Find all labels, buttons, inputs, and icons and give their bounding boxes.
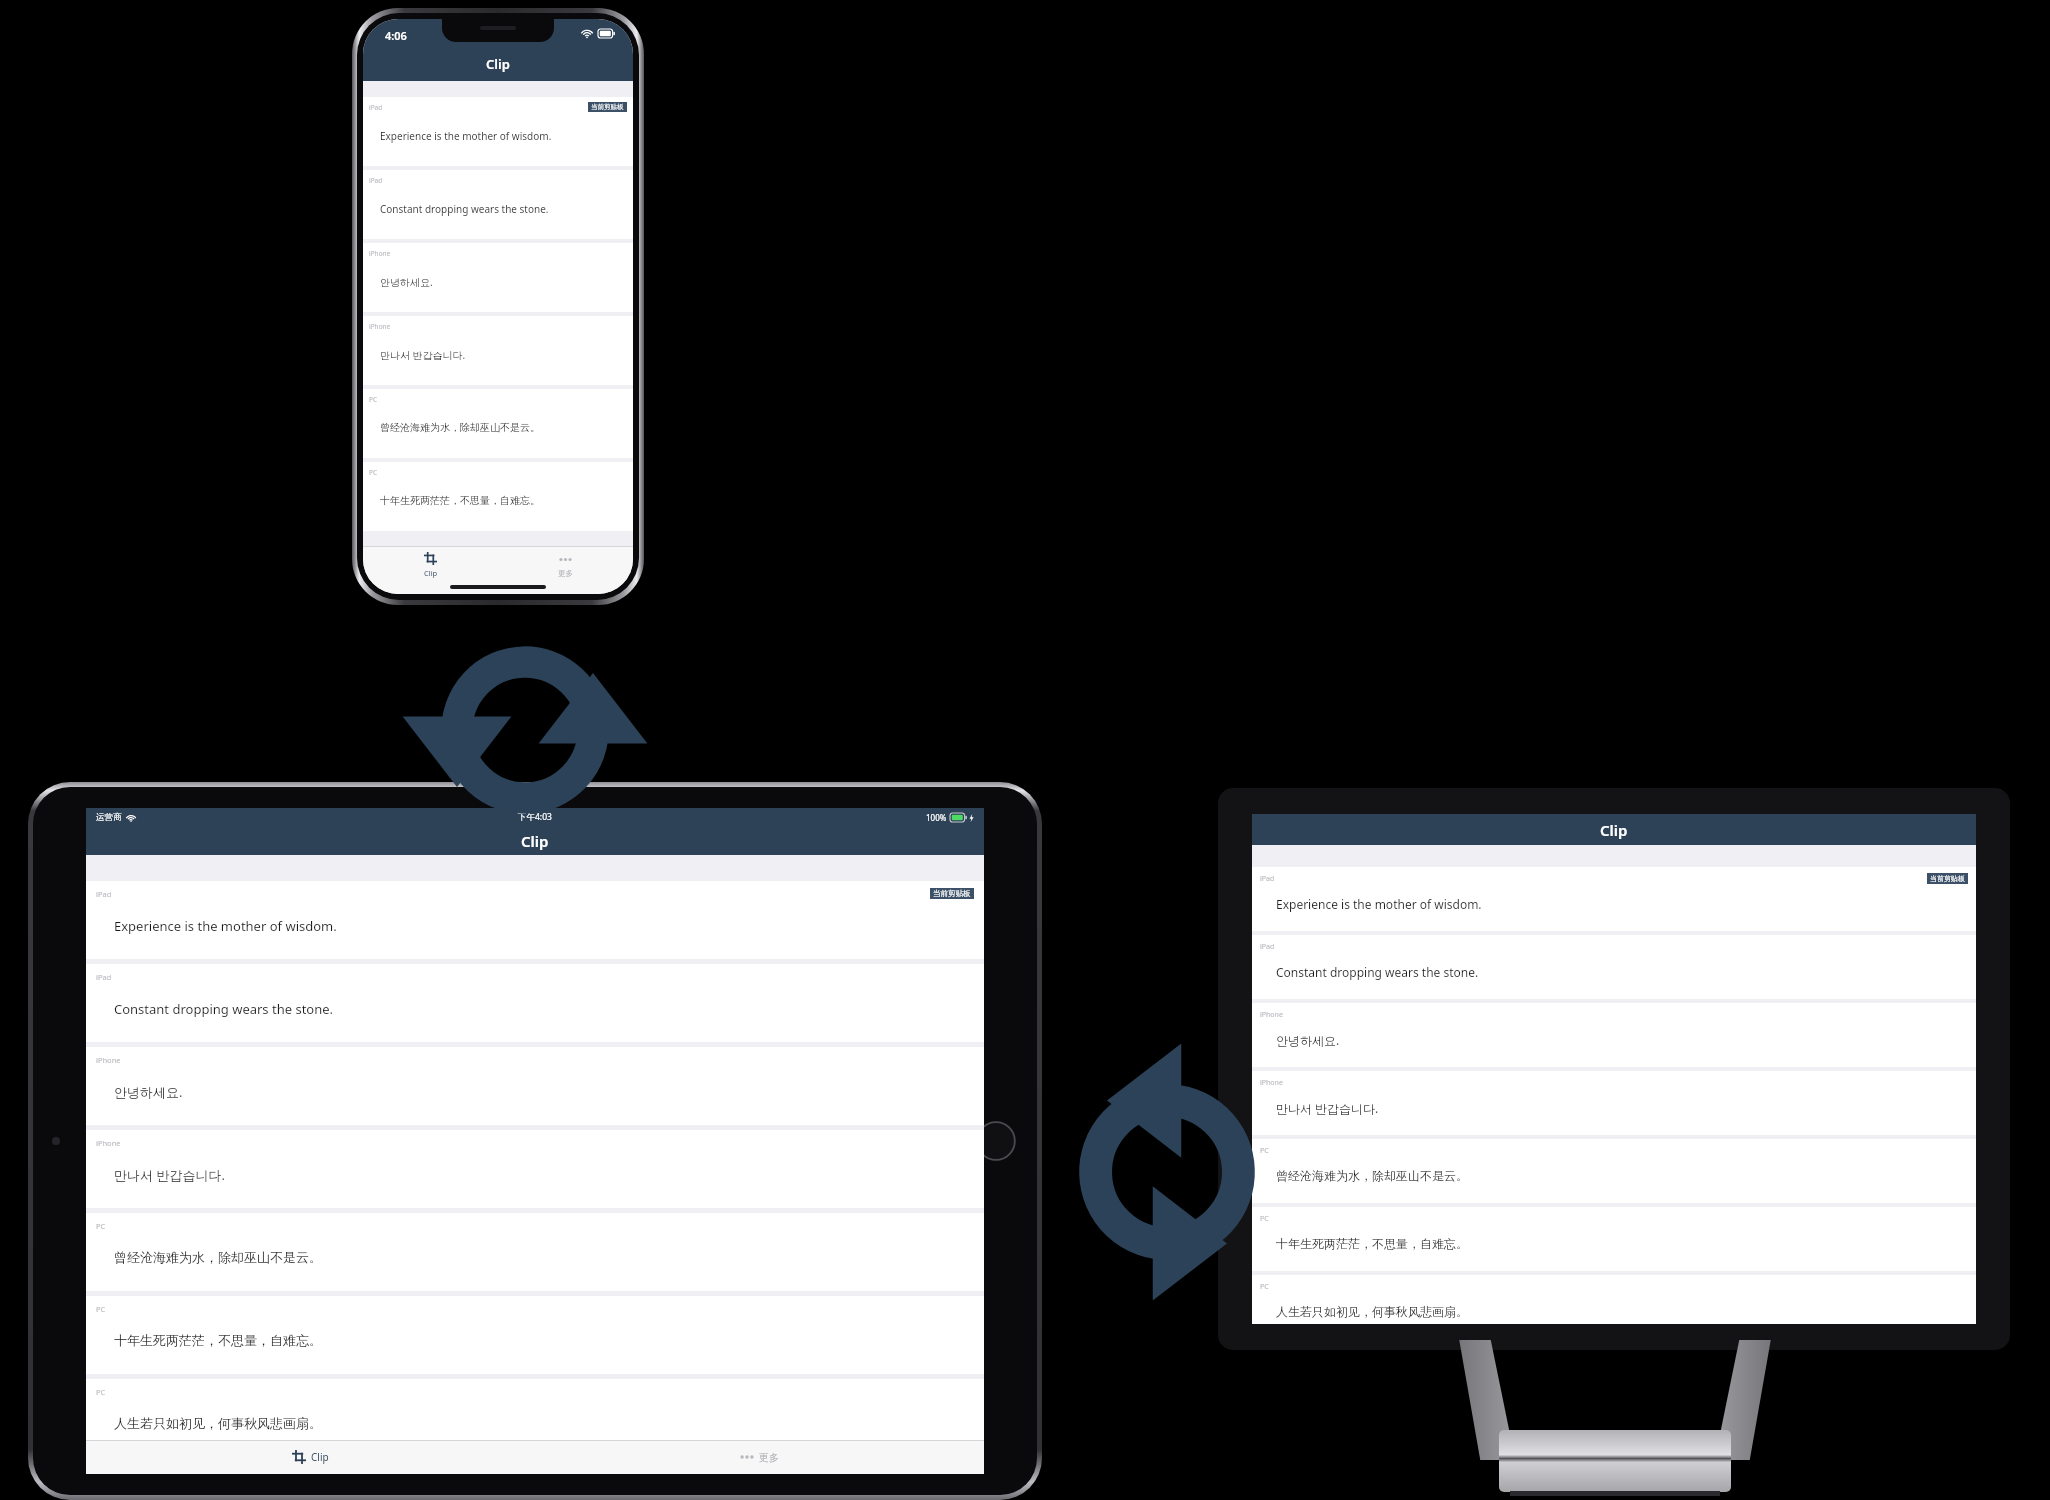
staticText: 运营商 xyxy=(96,812,122,823)
staticText: PC xyxy=(96,1387,106,1397)
button[interactable]: Sync between tablet and monitor xyxy=(1062,1032,1272,1312)
button[interactable]: iPhone xyxy=(1252,1003,1976,1067)
staticText: iPad xyxy=(1260,942,1275,952)
staticText: 十年生死两茫茫，不思量，自难忘。 xyxy=(1276,1236,1468,1251)
button[interactable]: 更多 xyxy=(535,1440,984,1474)
staticText: Experience is the mother of wisdom. xyxy=(1276,896,1482,912)
staticText: 当前剪贴板 xyxy=(933,889,971,898)
staticText: Constant dropping wears the stone. xyxy=(114,1000,334,1018)
staticText: 4:06 xyxy=(385,28,407,43)
button[interactable]: PC xyxy=(86,1296,984,1374)
button[interactable]: PC xyxy=(363,389,633,458)
staticText: 만나서 반갑습니다. xyxy=(1276,1100,1379,1116)
button[interactable]: 当前剪贴板 xyxy=(591,103,624,111)
staticText: 안녕하세요. xyxy=(1276,1032,1340,1048)
staticText: Clip xyxy=(521,831,549,851)
button[interactable]: 更多 xyxy=(498,546,633,584)
staticText: 人生若只如初见，何事秋风悲画扇。 xyxy=(114,1415,322,1431)
staticText: 曾经沧海难为水，除却巫山不是云。 xyxy=(1276,1168,1468,1183)
staticText: 更多 xyxy=(759,1451,779,1464)
staticText: PC xyxy=(369,395,378,404)
button[interactable]: PC xyxy=(86,1213,984,1291)
button[interactable]: PC xyxy=(1252,1275,1976,1324)
staticText: 当前剪贴板 xyxy=(1930,874,1965,883)
staticText: 十年生死两茫茫，不思量，自难忘。 xyxy=(380,494,540,507)
staticText: Clip xyxy=(311,1450,329,1464)
button[interactable]: iPad xyxy=(86,881,984,959)
staticText: iPhone xyxy=(369,322,391,331)
staticText: Experience is the mother of wisdom. xyxy=(114,917,337,935)
button[interactable]: iPad xyxy=(86,964,984,1042)
staticText: PC xyxy=(1260,1282,1269,1292)
staticText: 100% xyxy=(926,812,947,823)
button[interactable]: Clip xyxy=(86,1440,535,1474)
staticText: 만나서 반갑습니다. xyxy=(380,348,466,362)
staticText: iPad xyxy=(96,889,112,899)
staticText: 十年生死两茫茫，不思量，自难忘。 xyxy=(114,1332,322,1348)
button[interactable]: iPad xyxy=(1252,935,1976,999)
button[interactable]: Clip xyxy=(363,546,498,584)
staticText: 人生若只如初见，何事秋风悲画扇。 xyxy=(1276,1304,1468,1319)
staticText: Constant dropping wears the stone. xyxy=(380,202,549,216)
button[interactable]: iPhone xyxy=(86,1130,984,1208)
button[interactable]: 当前剪贴板 xyxy=(1930,874,1965,883)
button[interactable]: PC xyxy=(1252,1139,1976,1203)
staticText: iPad xyxy=(1260,874,1275,884)
staticText: 当前剪贴板 xyxy=(591,103,624,111)
staticText: iPhone xyxy=(1260,1010,1283,1020)
staticText: PC xyxy=(96,1304,106,1314)
staticText: iPad xyxy=(369,103,383,112)
staticText: iPad xyxy=(96,972,112,982)
button[interactable]: iPhone xyxy=(363,316,633,385)
staticText: 曾经沧海难为水，除却巫山不是云。 xyxy=(380,421,540,434)
staticText: PC xyxy=(1260,1214,1269,1224)
staticText: iPhone xyxy=(96,1055,121,1065)
button[interactable]: PC xyxy=(86,1379,984,1440)
button[interactable]: PC xyxy=(363,462,633,531)
staticText: Clip xyxy=(424,568,438,578)
staticText: PC xyxy=(369,468,378,477)
staticText: iPhone xyxy=(96,1138,121,1148)
button[interactable]: Sync between phone and tablet xyxy=(400,630,650,830)
staticText: iPad xyxy=(369,176,383,185)
staticText: PC xyxy=(96,1221,106,1231)
staticText: PC xyxy=(1260,1146,1269,1156)
staticText: 更多 xyxy=(558,569,573,578)
staticText: 만나서 반갑습니다. xyxy=(114,1166,225,1184)
staticText: Clip xyxy=(486,55,510,73)
staticText: 下午4:03 xyxy=(518,811,552,823)
staticText: 曾经沧海难为水，除却巫山不是云。 xyxy=(114,1249,322,1265)
button[interactable]: iPhone xyxy=(86,1047,984,1125)
button[interactable]: 当前剪贴板 xyxy=(933,889,971,898)
staticText: iPhone xyxy=(1260,1078,1283,1088)
staticText: Constant dropping wears the stone. xyxy=(1276,964,1479,980)
button[interactable]: iPhone xyxy=(1252,1071,1976,1135)
button[interactable]: iPad xyxy=(1252,867,1976,931)
button[interactable]: iPhone xyxy=(363,243,633,312)
staticText: iPhone xyxy=(369,249,391,258)
button[interactable]: iPad xyxy=(363,170,633,239)
staticText: 안녕하세요. xyxy=(114,1083,183,1101)
button[interactable]: iPad xyxy=(363,97,633,166)
staticText: Clip xyxy=(1600,820,1628,840)
button[interactable]: PC xyxy=(1252,1207,1976,1271)
staticText: Experience is the mother of wisdom. xyxy=(380,129,552,143)
staticText: 안녕하세요. xyxy=(380,275,433,289)
